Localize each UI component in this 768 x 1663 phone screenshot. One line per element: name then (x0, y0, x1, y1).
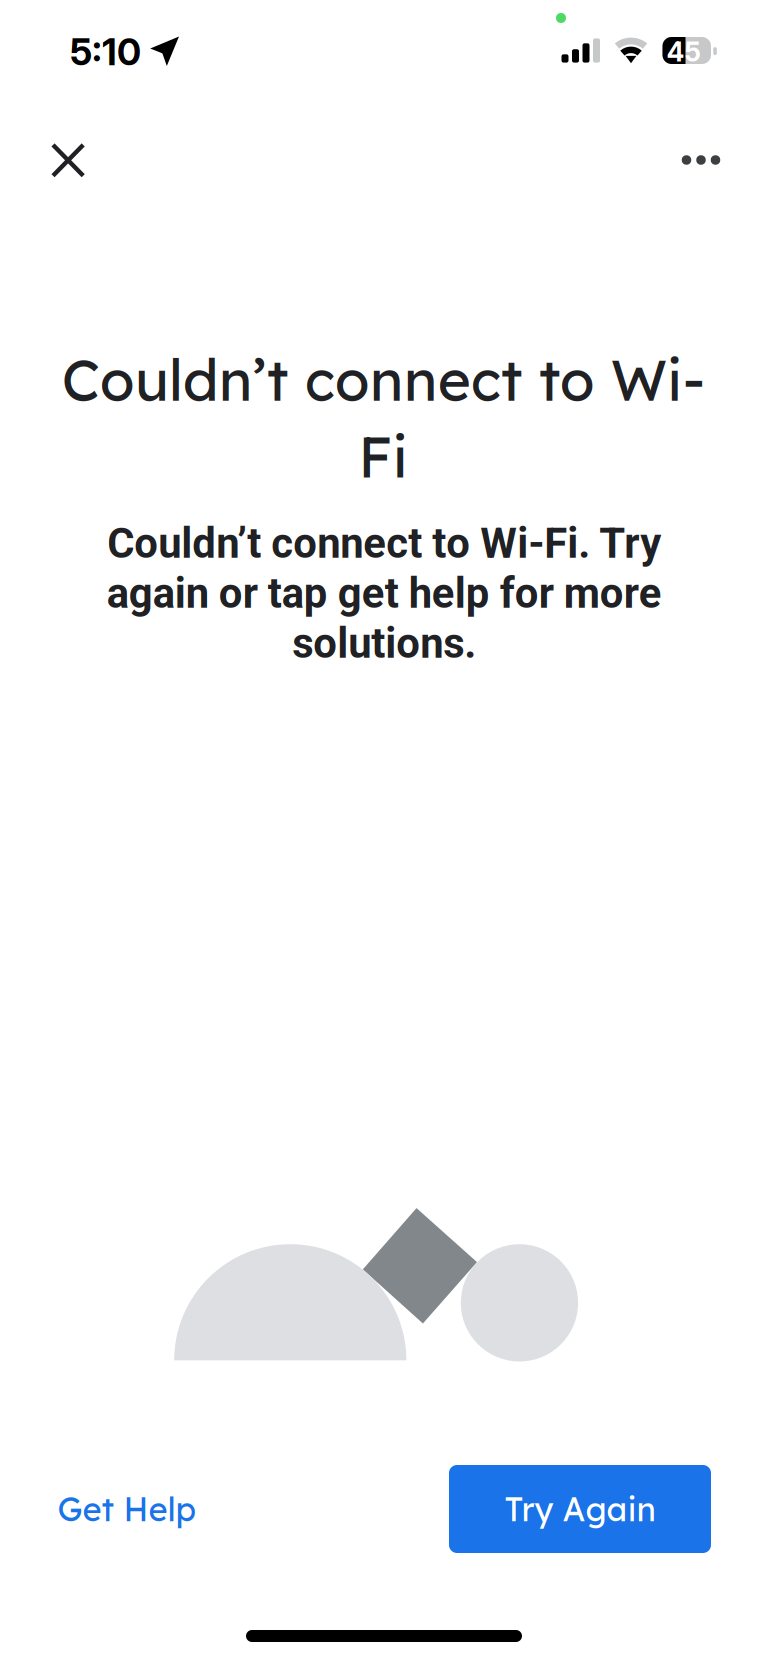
staticText: Couldn’t connect to Wi-Fi (61, 344, 704, 492)
button[interactable]: More options (673, 134, 729, 186)
staticText: Get Help (57, 1489, 196, 1529)
button[interactable]: Close (42, 133, 94, 185)
staticText: Try Again (504, 1489, 655, 1529)
button[interactable]: Try Again (449, 1465, 711, 1553)
staticText: 45 (666, 36, 700, 68)
staticText: Couldn’t connect to Wi-Fi. Try again or … (106, 519, 661, 668)
staticText: 5:10 (70, 30, 141, 74)
button[interactable]: Get Help (27, 1465, 227, 1553)
